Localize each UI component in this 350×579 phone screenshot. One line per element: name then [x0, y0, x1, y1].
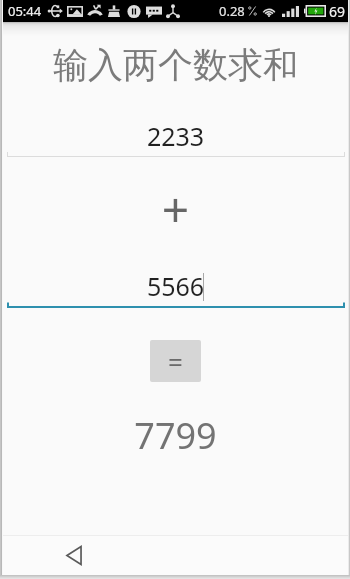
staticText: 0.28 [219, 2, 245, 20]
staticText: 69 [329, 2, 346, 21]
staticText: 05:44 [8, 2, 42, 20]
button[interactable]: Back [54, 536, 94, 575]
staticText: 2233 [3, 119, 348, 153]
staticText: = [168, 344, 183, 379]
staticText: + [3, 176, 348, 241]
staticText: 输入两个数求和 [3, 43, 348, 87]
staticText: 5566 [3, 269, 348, 303]
button[interactable]: = [150, 340, 201, 382]
staticText: 7799 [3, 411, 348, 460]
